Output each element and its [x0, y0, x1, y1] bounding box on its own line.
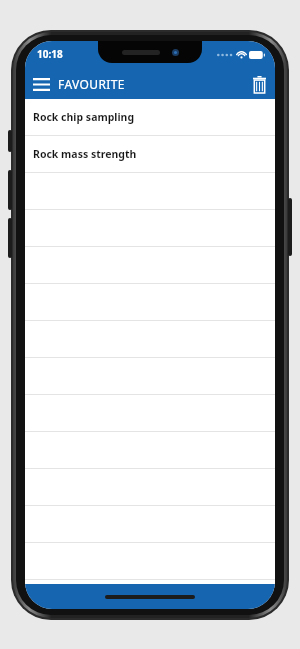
button[interactable]: Delete all favourites: [244, 72, 275, 97]
staticText: 10:18: [37, 47, 63, 61]
button[interactable]: Rock mass strength: [25, 136, 275, 173]
button[interactable]: [25, 543, 275, 580]
staticText: Rock chip sampling: [33, 110, 135, 124]
button[interactable]: [25, 432, 275, 469]
button[interactable]: [25, 506, 275, 543]
button[interactable]: [25, 469, 275, 506]
button[interactable]: [25, 210, 275, 247]
button[interactable]: [25, 284, 275, 321]
button[interactable]: Rock chip sampling: [25, 99, 275, 136]
button[interactable]: [25, 358, 275, 395]
button[interactable]: [25, 173, 275, 210]
button[interactable]: Open navigation menu: [25, 73, 58, 96]
button[interactable]: [25, 395, 275, 432]
staticText: Rock mass strength: [33, 147, 137, 161]
staticText: FAVOURITE: [58, 76, 125, 92]
button[interactable]: [25, 321, 275, 358]
button[interactable]: [25, 247, 275, 284]
